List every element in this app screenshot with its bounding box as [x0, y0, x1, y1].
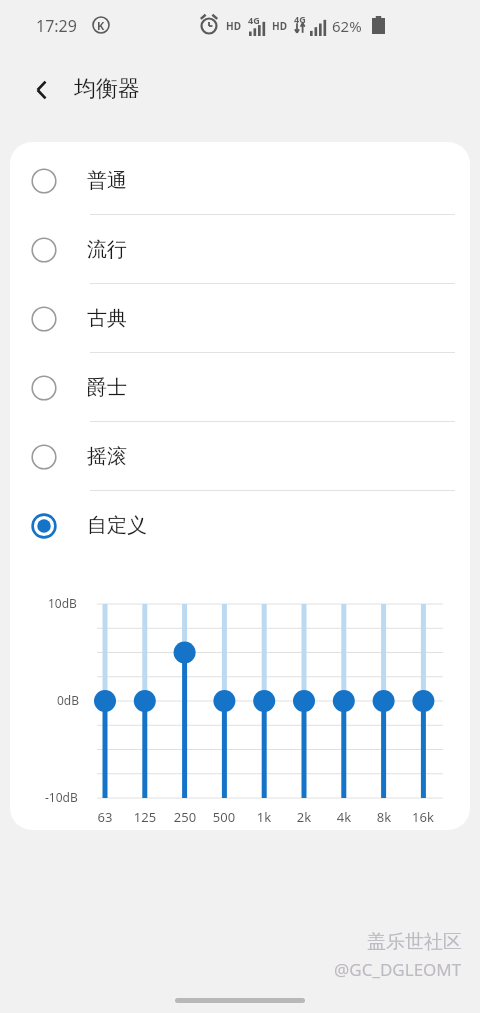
staticText: 摇滚 [87, 444, 127, 469]
staticText: 均衡器 [74, 75, 140, 103]
staticText: 流行 [87, 237, 127, 262]
staticText: 古典 [87, 306, 127, 331]
staticText: 8k [364, 808, 404, 826]
staticText: 普通 [87, 168, 127, 193]
button[interactable]: 流行 [10, 215, 470, 284]
staticText: 盖乐世社区 [367, 930, 462, 954]
staticText: 0dB [57, 692, 80, 708]
staticText: 16k [403, 808, 443, 826]
staticText: HD [272, 19, 287, 33]
staticText: 62% [332, 16, 362, 36]
staticText: 250 [165, 808, 205, 826]
button[interactable]: Back [20, 68, 64, 112]
staticText: 500 [204, 808, 244, 826]
button[interactable]: 普通 [10, 146, 470, 215]
staticText: HD [226, 19, 241, 33]
button[interactable]: 摇滚 [10, 422, 470, 491]
staticText: K [97, 18, 105, 33]
staticText: @GC_DGLEOMT [334, 958, 462, 981]
staticText: -10dB [45, 789, 78, 805]
staticText: 4G [294, 13, 306, 25]
staticText: 4k [324, 808, 364, 826]
staticText: 10dB [48, 595, 77, 611]
staticText: 2k [284, 808, 324, 826]
staticText: 自定义 [87, 513, 147, 538]
staticText: 1k [244, 808, 284, 826]
button[interactable]: 自定义 [10, 491, 470, 560]
staticText: 4G [248, 14, 260, 26]
staticText: 17:29 [36, 15, 77, 37]
button[interactable]: 爵士 [10, 353, 470, 422]
staticText: 63 [85, 808, 125, 826]
staticText: 125 [125, 808, 165, 826]
button[interactable]: 古典 [10, 284, 470, 353]
staticText: 爵士 [87, 375, 127, 400]
